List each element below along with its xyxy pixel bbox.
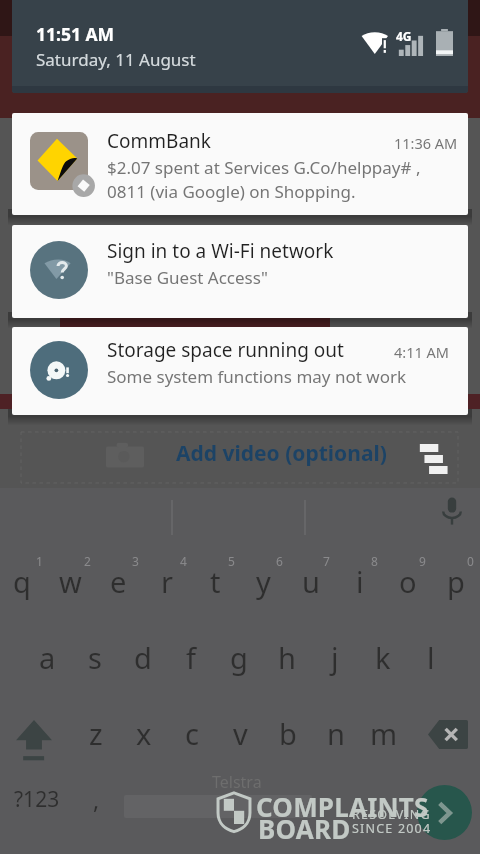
staticText: Some system functions may not work [107, 365, 407, 388]
staticText: n [327, 714, 345, 753]
button[interactable]: b [264, 709, 312, 757]
button[interactable]: p [432, 557, 480, 605]
staticText: 11:51 AM [36, 22, 115, 46]
button[interactable]: n [312, 709, 360, 757]
staticText: f [186, 638, 196, 677]
staticText: y [256, 562, 271, 601]
staticText: t [210, 562, 221, 601]
button[interactable]: d [119, 633, 167, 681]
staticText: a [39, 638, 56, 677]
button[interactable]: e [94, 557, 142, 605]
staticText: ?123 [14, 785, 60, 814]
button[interactable]: c [168, 709, 216, 757]
staticText: i [356, 562, 364, 601]
staticText: m [370, 714, 398, 753]
button[interactable]: Shift [6, 710, 62, 766]
staticText: 4:11 AM [394, 342, 449, 362]
staticText: Saturday, 11 August [36, 48, 196, 71]
staticText: 8 [371, 553, 378, 569]
button[interactable]: o [384, 557, 432, 605]
button[interactable]: i [336, 557, 384, 605]
button[interactable]: s [71, 633, 119, 681]
button[interactable]: h [263, 633, 311, 681]
button[interactable]: , [78, 776, 114, 822]
staticText: 1 [36, 553, 43, 569]
button[interactable]: u [287, 557, 335, 605]
button[interactable]: l [407, 633, 455, 681]
staticText: Telstra [212, 771, 262, 793]
staticText: 11:36 AM [394, 133, 458, 153]
staticText: , [93, 784, 100, 815]
staticText: RESOLVING [352, 806, 431, 823]
other: Battery [436, 29, 453, 56]
button[interactable] [124, 795, 312, 818]
staticText: l [427, 638, 435, 677]
staticText: q [13, 562, 31, 601]
button[interactable]: Next [417, 785, 472, 840]
button[interactable]: Voice input [430, 490, 474, 534]
staticText: 6 [276, 553, 283, 569]
staticText: k [375, 638, 391, 677]
button[interactable]: ?123 [4, 776, 70, 822]
button[interactable]: w [46, 557, 94, 605]
staticText: v [233, 714, 248, 753]
button[interactable]: v [216, 709, 264, 757]
other: Text align [419, 444, 461, 476]
staticText: 9 [419, 553, 426, 569]
staticText: d [134, 638, 152, 677]
button[interactable]: q [0, 557, 46, 605]
button[interactable]: r [143, 557, 191, 605]
staticText: SINCE 2004 [352, 820, 432, 837]
staticText: $2.07 spent at Services G.Co/helppay# , … [107, 156, 421, 203]
staticText: h [278, 638, 296, 677]
staticText: Sign in to a Wi-Fi network [107, 238, 334, 264]
staticText: 0 [467, 553, 474, 569]
staticText: "Base Guest Access" [107, 266, 268, 289]
staticText: e [110, 562, 127, 601]
staticText: c [185, 714, 199, 753]
staticText: 2 [84, 553, 91, 569]
staticText: o [399, 562, 417, 601]
staticText: b [279, 714, 297, 753]
button[interactable]: Storage space running out [12, 327, 468, 415]
other: Wi-Fi [361, 31, 391, 55]
staticText: r [161, 562, 173, 601]
button[interactable]: t [191, 557, 239, 605]
button[interactable]: y [239, 557, 287, 605]
staticText: z [89, 714, 103, 753]
button[interactable]: x [120, 709, 168, 757]
button[interactable]: k [359, 633, 407, 681]
staticText: BOARD [258, 811, 351, 846]
button[interactable]: a [23, 633, 71, 681]
staticText: g [230, 638, 248, 677]
staticText: s [88, 638, 102, 677]
staticText: CommBank [107, 128, 211, 154]
button[interactable]: Backspace [420, 712, 476, 764]
staticText: 4G [396, 28, 412, 44]
button[interactable]: CommBank [12, 113, 468, 215]
staticText: p [447, 562, 465, 601]
staticText: 3 [132, 553, 139, 569]
staticText: x [136, 714, 152, 753]
other: Mobile signal 4G [398, 35, 426, 56]
staticText: Storage space running out [107, 337, 344, 363]
button[interactable]: j [311, 633, 359, 681]
button[interactable]: g [215, 633, 263, 681]
staticText: 5 [228, 553, 235, 569]
staticText: w [59, 562, 82, 601]
button[interactable]: Add video (optional) [176, 439, 387, 468]
staticText: 4 [180, 553, 187, 569]
button[interactable]: m [360, 709, 408, 757]
button[interactable]: f [167, 633, 215, 681]
staticText: COMPLAINTS [256, 789, 429, 824]
button[interactable]: z [72, 709, 120, 757]
staticText: u [302, 562, 320, 601]
button[interactable]: Sign in to a Wi-Fi network [12, 225, 468, 318]
staticText: 7 [323, 553, 330, 569]
staticText: j [331, 638, 339, 677]
